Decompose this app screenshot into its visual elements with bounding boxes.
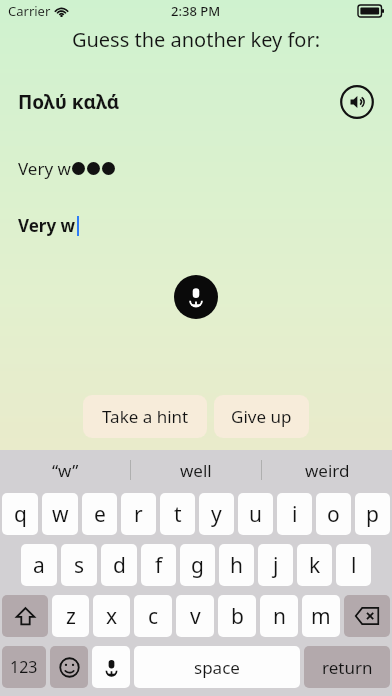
button[interactable]: Emoji [50,646,88,688]
button[interactable]: Play audio [340,85,374,119]
button[interactable]: p [355,493,390,535]
staticText: Very w [18,214,76,237]
staticText: s [74,551,85,580]
staticText: 2:38 PM [171,2,221,20]
staticText: h [230,551,243,580]
staticText: g [191,551,204,580]
staticText: t [174,500,182,529]
staticText: weird [305,459,350,482]
button[interactable]: a [21,544,57,586]
button[interactable]: return [304,646,390,688]
button[interactable]: q [2,493,38,535]
staticText: v [190,602,201,631]
button[interactable]: Take a hint [83,395,207,438]
staticText: b [231,602,244,631]
button[interactable]: Dictation [92,646,130,688]
staticText: w [52,500,69,529]
button[interactable]: b [218,595,256,637]
staticText: Guess the another key for: [0,26,392,53]
staticText: Give up [231,405,292,428]
button[interactable]: 123 [2,646,46,688]
button[interactable]: weird [262,450,392,490]
staticText: f [155,551,163,580]
staticText: j [273,551,279,580]
staticText: u [249,500,262,529]
button[interactable]: d [101,544,137,586]
button[interactable]: n [260,595,298,637]
button[interactable]: s [61,544,97,586]
staticText: Very w [18,157,71,180]
button[interactable]: i [277,493,312,535]
staticText: space [194,656,240,679]
button[interactable]: x [93,595,130,637]
staticText: r [134,500,143,529]
staticText: “w” [52,459,79,482]
button[interactable]: l [336,544,371,586]
button[interactable]: u [238,493,273,535]
button[interactable]: r [121,493,156,535]
staticText: i [292,500,298,529]
button[interactable]: well [131,450,261,490]
staticText: k [309,551,321,580]
button[interactable]: Shift [2,595,48,637]
button[interactable]: f [141,544,176,586]
button[interactable]: k [297,544,332,586]
staticText: a [33,551,45,580]
staticText: q [14,500,27,529]
staticText: Take a hint [102,405,189,428]
staticText: Πολύ καλά [18,89,120,115]
button[interactable]: h [219,544,254,586]
button[interactable]: y [199,493,234,535]
staticText: z [66,602,76,631]
button[interactable]: c [134,595,172,637]
button[interactable]: Give up [214,395,309,438]
staticText: return [322,656,373,679]
staticText: n [273,602,286,631]
button[interactable]: g [180,544,215,586]
button[interactable]: o [316,493,351,535]
staticText: c [148,602,159,631]
button[interactable]: e [82,493,117,535]
staticText: Carrier [8,2,51,20]
button[interactable]: j [258,544,293,586]
button[interactable]: “w” [0,450,130,490]
button[interactable]: t [160,493,195,535]
staticText: e [94,500,106,529]
button[interactable]: space [134,646,300,688]
button[interactable]: Record with microphone [174,275,218,319]
button[interactable]: m [302,595,340,637]
staticText: well [180,459,212,482]
button[interactable]: Backspace [344,595,390,637]
staticText: 123 [10,656,38,678]
staticText: p [366,500,379,529]
staticText: x [106,602,118,631]
staticText: d [113,551,126,580]
staticText: l [351,551,357,580]
button[interactable]: w [42,493,78,535]
button[interactable]: z [52,595,89,637]
button[interactable]: v [176,595,214,637]
staticText: y [211,500,222,529]
staticText: o [327,500,340,529]
staticText: m [311,602,331,631]
